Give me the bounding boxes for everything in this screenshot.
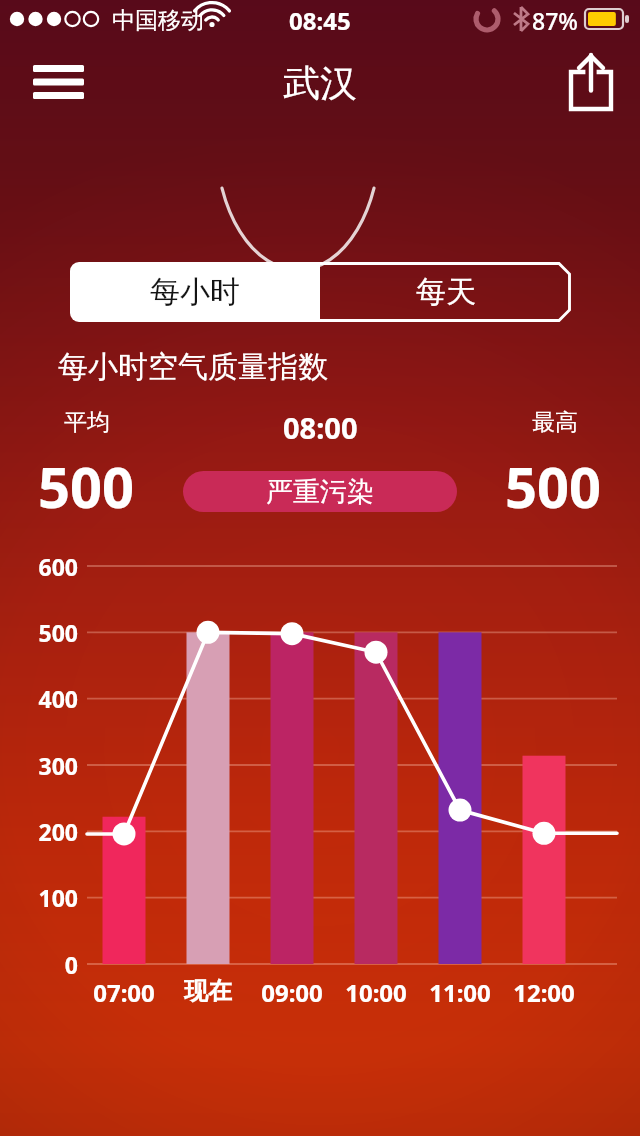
staticText: 平均 bbox=[64, 408, 110, 437]
button[interactable]: 严重污染 bbox=[183, 471, 457, 512]
staticText: 武汉 bbox=[283, 60, 357, 107]
staticText: 每天 bbox=[416, 273, 476, 311]
staticText: 10:00 bbox=[331, 976, 421, 1009]
staticText: 500 bbox=[2, 617, 78, 648]
staticText: 400 bbox=[2, 683, 78, 714]
staticText: 11:00 bbox=[415, 976, 505, 1009]
staticText: 07:00 bbox=[79, 976, 169, 1009]
staticText: 08:45 bbox=[289, 4, 351, 37]
staticText: 每小时 bbox=[150, 273, 240, 311]
button[interactable]: 每天 bbox=[320, 262, 571, 322]
staticText: 12:00 bbox=[499, 976, 589, 1009]
staticText: 现在 bbox=[163, 976, 253, 1006]
staticText: 500 bbox=[38, 448, 135, 524]
staticText: 200 bbox=[2, 816, 78, 847]
button[interactable]: 每小时 bbox=[70, 262, 320, 322]
staticText: 600 bbox=[2, 551, 78, 582]
staticText: 严重污染 bbox=[266, 475, 374, 509]
staticText: 每小时空气质量指数 bbox=[58, 348, 328, 386]
staticText: 500 bbox=[505, 448, 602, 524]
staticText: 最高 bbox=[532, 408, 578, 437]
staticText: 100 bbox=[2, 882, 78, 913]
staticText: 09:00 bbox=[247, 976, 337, 1009]
button[interactable]: Share bbox=[560, 49, 622, 117]
staticText: 87% bbox=[532, 5, 578, 36]
staticText: 08:00 bbox=[283, 408, 358, 447]
staticText: 中国移动 bbox=[112, 6, 204, 35]
staticText: 0 bbox=[2, 949, 78, 980]
button[interactable]: Menu bbox=[20, 52, 98, 114]
staticText: 300 bbox=[2, 750, 78, 781]
